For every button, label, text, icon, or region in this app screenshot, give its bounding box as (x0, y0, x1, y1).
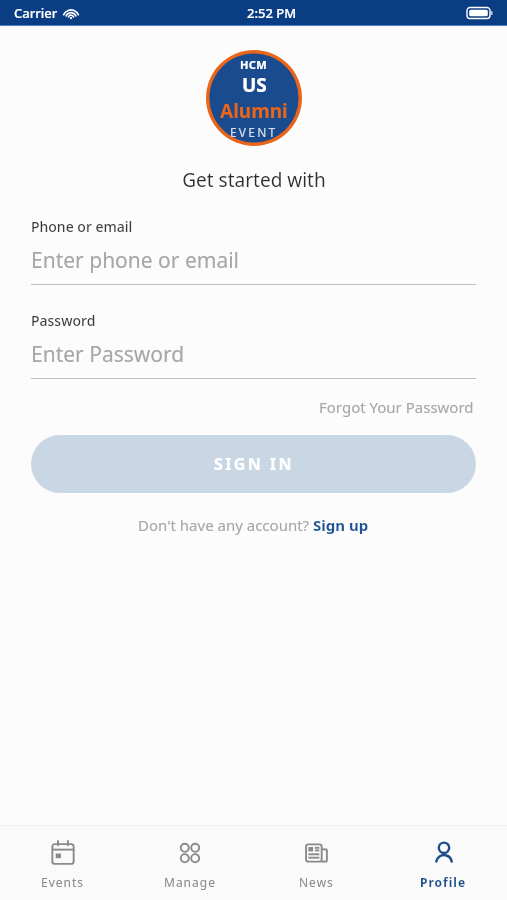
staticText: US (242, 72, 267, 98)
staticText: News (299, 874, 334, 890)
button[interactable]: Sign up (313, 515, 369, 535)
staticText: Events (41, 874, 85, 890)
button[interactable]: Profile (380, 826, 507, 890)
button[interactable]: Forgot Your Password (317, 393, 476, 421)
staticText: HCM (240, 57, 268, 72)
staticText: SIGN IN (214, 453, 294, 475)
button[interactable]: News (253, 826, 380, 890)
button[interactable]: Events (0, 826, 126, 890)
staticText: Manage (164, 874, 216, 890)
staticText: Don't have any account? (138, 515, 313, 535)
staticText: Get started with (182, 167, 326, 193)
staticText: Carrier (14, 4, 58, 22)
staticText: Sign up (313, 515, 369, 535)
button[interactable]: Enter Password (31, 340, 476, 379)
button[interactable]: Manage (126, 826, 253, 890)
staticText: Profile (420, 874, 467, 890)
button[interactable]: SIGN IN (31, 435, 476, 493)
staticText: 2:52 PM (247, 4, 297, 22)
staticText: EVENT (230, 124, 278, 140)
staticText: Alumni (220, 98, 288, 124)
staticText: Forgot Your Password (319, 397, 474, 417)
staticText: Password (31, 311, 96, 330)
staticText: Enter phone or email (31, 246, 240, 275)
button[interactable]: Enter phone or email (31, 246, 476, 285)
staticText: Phone or email (31, 217, 133, 236)
staticText: Enter Password (31, 340, 185, 369)
